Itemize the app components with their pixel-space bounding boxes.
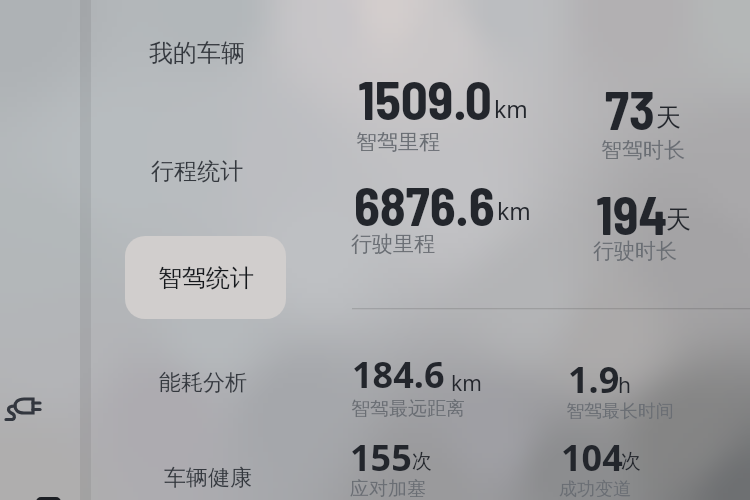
button[interactable] bbox=[135, 26, 251, 70]
button[interactable] bbox=[150, 452, 266, 496]
staticText: km bbox=[497, 195, 531, 226]
button[interactable] bbox=[344, 427, 504, 499]
staticText: 155 bbox=[350, 433, 412, 482]
button[interactable] bbox=[348, 167, 508, 239]
staticText: km bbox=[494, 93, 528, 124]
staticText: 行驶里程 bbox=[351, 231, 435, 257]
staticText: 应对加塞 bbox=[350, 477, 426, 500]
button[interactable] bbox=[555, 427, 715, 499]
staticText: 智驾里程 bbox=[356, 129, 440, 155]
staticText: 我的车辆 bbox=[149, 38, 245, 68]
staticText: 184.6 bbox=[352, 350, 445, 399]
staticText: 6876.6 bbox=[354, 173, 495, 237]
staticText: 成功变道 bbox=[559, 478, 631, 500]
staticText: h bbox=[618, 371, 631, 400]
staticText: 104 bbox=[561, 433, 623, 482]
staticText: 车辆健康 bbox=[164, 464, 252, 492]
staticText: 天 bbox=[656, 102, 681, 133]
staticText: 1509.0 bbox=[358, 67, 492, 131]
staticText: 天 bbox=[666, 204, 691, 235]
button[interactable]: 智驾统计 bbox=[125, 236, 286, 319]
staticText: 行驶时长 bbox=[593, 238, 677, 264]
staticText: 194 bbox=[596, 182, 668, 246]
button[interactable] bbox=[346, 344, 506, 416]
staticText: 智驾最长时间 bbox=[566, 400, 674, 423]
staticText: 智驾最远距离 bbox=[351, 397, 465, 421]
button[interactable] bbox=[599, 71, 750, 143]
button[interactable] bbox=[562, 349, 722, 421]
staticText: 1.9 bbox=[568, 355, 620, 404]
staticText: km bbox=[451, 369, 482, 398]
button[interactable] bbox=[137, 145, 253, 189]
button[interactable] bbox=[590, 176, 750, 248]
button[interactable] bbox=[145, 357, 261, 401]
staticText: 次 bbox=[621, 449, 641, 474]
staticText: 智驾时长 bbox=[601, 137, 685, 163]
button[interactable] bbox=[352, 61, 512, 133]
button[interactable]: Charging bbox=[0, 386, 48, 430]
staticText: 次 bbox=[412, 449, 432, 474]
staticText: 73 bbox=[605, 77, 655, 141]
staticText: 能耗分析 bbox=[159, 369, 247, 397]
staticText: 智驾统计 bbox=[158, 263, 254, 293]
staticText: 行程统计 bbox=[151, 157, 243, 186]
